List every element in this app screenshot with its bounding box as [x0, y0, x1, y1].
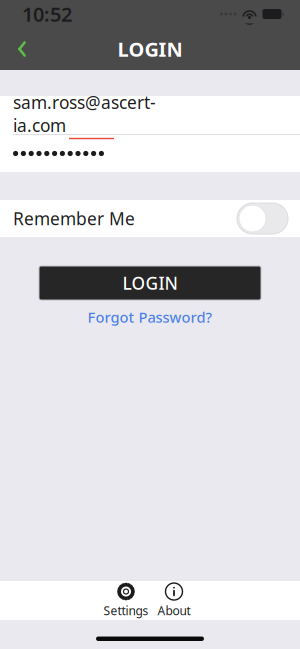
staticText: LOGIN — [122, 271, 177, 294]
staticText: LOGIN — [117, 36, 182, 62]
button[interactable]: LOGIN — [39, 266, 261, 300]
button[interactable]: Settings — [102, 581, 150, 620]
button[interactable]: Remember Me — [0, 200, 300, 237]
staticText: Forgot Password? — [87, 307, 212, 327]
button[interactable]: Forgot Password? — [0, 309, 300, 325]
button[interactable]: About — [150, 581, 198, 620]
staticText: About — [157, 602, 190, 618]
button[interactable]: Back — [0, 28, 44, 70]
staticText: 10:52 — [22, 1, 72, 27]
staticText: Remember Me — [13, 207, 135, 230]
staticText: Settings — [103, 602, 148, 618]
staticText: sam.ross@ascertia.com — [13, 91, 156, 137]
